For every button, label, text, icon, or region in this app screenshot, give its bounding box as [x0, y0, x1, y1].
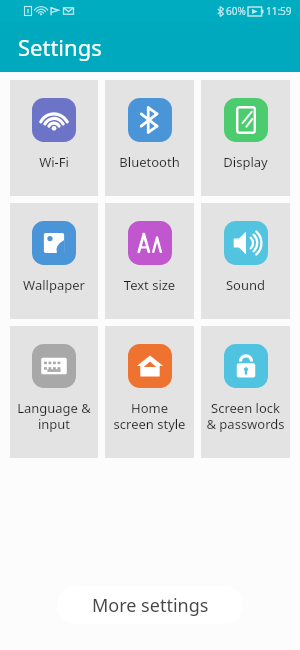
staticText: Bluetooth [105, 153, 194, 171]
staticText: Screen lock & passwords [201, 399, 290, 432]
staticText: More settings [92, 593, 209, 618]
button[interactable]: Bluetooth [105, 80, 194, 196]
button[interactable]: Screen lock & passwords [201, 326, 290, 458]
staticText: 11:59 [266, 4, 292, 18]
staticText: Settings [18, 32, 102, 62]
button[interactable]: Wi-Fi [10, 80, 98, 196]
staticText: 60% [226, 4, 246, 18]
button[interactable]: Home screen style [105, 326, 194, 458]
button[interactable]: Text size [105, 203, 194, 319]
button[interactable]: Display [201, 80, 290, 196]
button[interactable]: Wallpaper [10, 203, 98, 319]
staticText: Wallpaper [10, 276, 98, 294]
staticText: Text size [105, 276, 194, 294]
button[interactable]: Sound [201, 203, 290, 319]
button[interactable]: More settings [57, 586, 243, 624]
staticText: Sound [201, 276, 290, 294]
staticText: Home screen style [105, 399, 194, 432]
staticText: Wi-Fi [10, 153, 98, 171]
button[interactable]: Language & input [10, 326, 98, 458]
staticText: Display [201, 153, 290, 171]
staticText: Language & input [10, 399, 98, 432]
